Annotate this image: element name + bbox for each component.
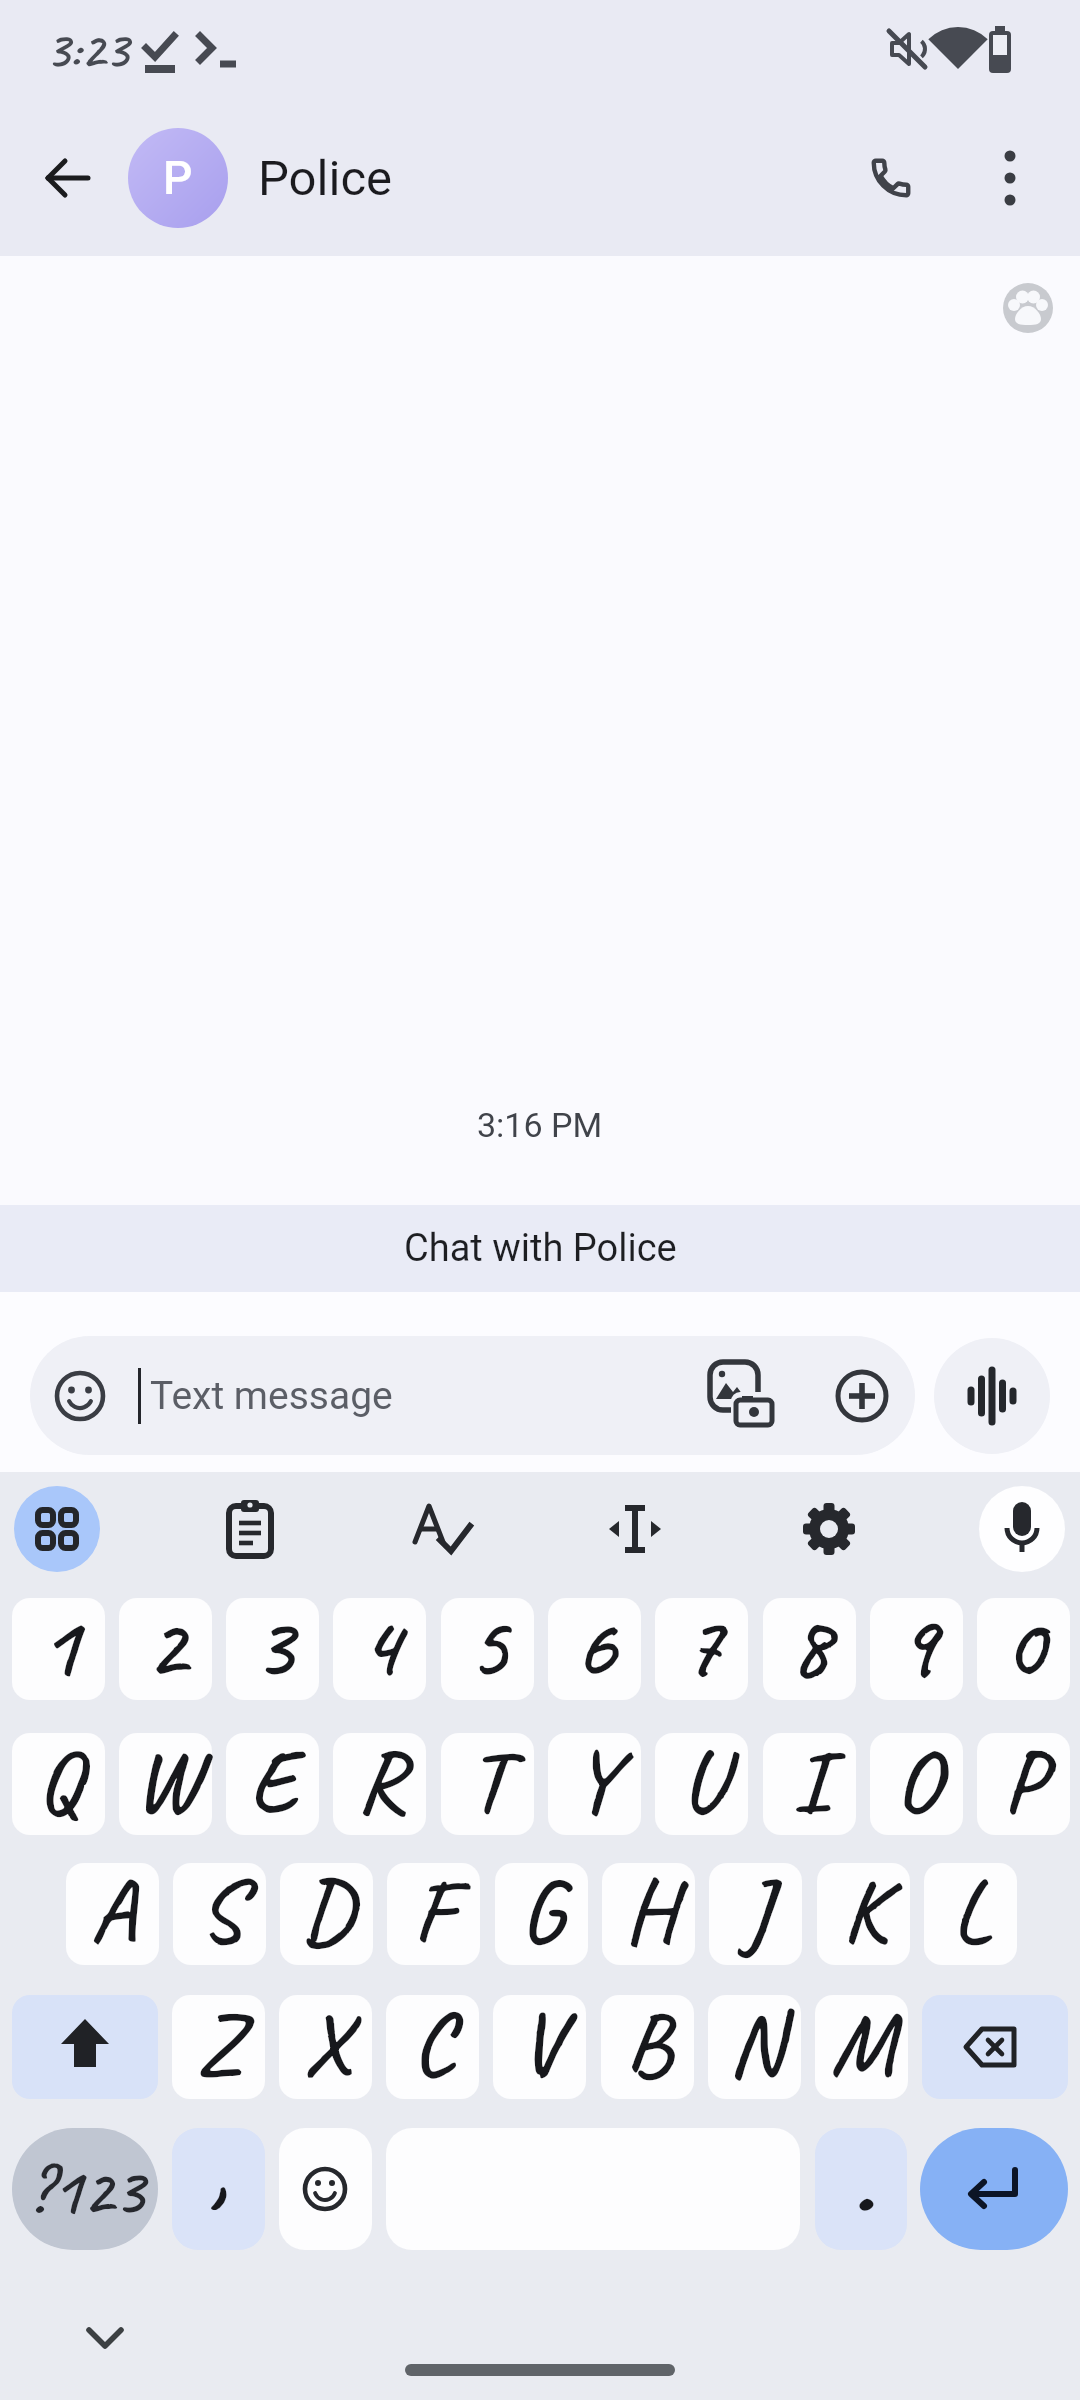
staticText: Text message [150,1373,393,1419]
button[interactable] [173,1863,266,1965]
button[interactable] [75,2316,135,2362]
button[interactable] [408,1496,480,1562]
button[interactable] [706,1358,778,1430]
button[interactable] [1002,282,1054,334]
button[interactable] [495,1863,588,1965]
button[interactable] [44,154,92,202]
button[interactable] [226,1733,319,1835]
button[interactable] [14,1486,100,1572]
button[interactable] [830,1364,894,1428]
button[interactable] [280,1863,373,1965]
button[interactable] [66,1863,159,1965]
button[interactable] [493,1995,586,2099]
button[interactable] [172,2128,265,2250]
button[interactable] [796,1496,862,1562]
button[interactable] [12,1733,105,1835]
button[interactable] [220,1498,282,1560]
staticText: Police [258,150,393,207]
button[interactable] [386,1995,479,2099]
button[interactable] [763,1598,856,1700]
button[interactable] [977,1598,1070,1700]
button[interactable] [977,1733,1070,1835]
button[interactable] [30,1336,915,1455]
button[interactable] [441,1598,534,1700]
button[interactable] [655,1598,748,1700]
button[interactable] [817,1863,910,1965]
button[interactable] [387,1863,480,1965]
button[interactable] [655,1733,748,1835]
staticText: P [163,151,193,205]
button[interactable] [12,1598,105,1700]
staticText: 3:16 PM [477,1105,603,1145]
button[interactable] [172,1995,265,2099]
button[interactable] [548,1733,641,1835]
button[interactable] [709,1863,802,1965]
button[interactable] [815,2128,907,2250]
button[interactable]: Police [258,128,558,228]
button[interactable] [602,1863,695,1965]
button[interactable] [924,1863,1017,1965]
button[interactable]: P [128,128,228,228]
button[interactable] [868,155,914,201]
button[interactable] [979,1486,1065,1572]
button[interactable] [870,1598,963,1700]
button[interactable] [333,1733,426,1835]
button[interactable] [601,1995,694,2099]
button[interactable] [548,1598,641,1700]
staticText: Chat with Police [404,1226,677,1271]
button[interactable] [12,1995,158,2099]
button[interactable] [934,1338,1050,1454]
button[interactable] [279,1995,372,2099]
button[interactable] [763,1733,856,1835]
button[interactable] [920,2128,1068,2250]
button[interactable] [119,1733,212,1835]
button[interactable] [119,1598,212,1700]
button[interactable] [602,1496,668,1562]
button[interactable] [708,1995,801,2099]
button[interactable] [333,1598,426,1700]
button[interactable] [12,2128,158,2250]
button[interactable] [815,1995,908,2099]
button[interactable] [870,1733,963,1835]
button[interactable] [441,1733,534,1835]
button[interactable] [226,1598,319,1700]
button[interactable] [279,2128,372,2250]
button[interactable] [922,1995,1068,2099]
button[interactable] [988,146,1032,210]
